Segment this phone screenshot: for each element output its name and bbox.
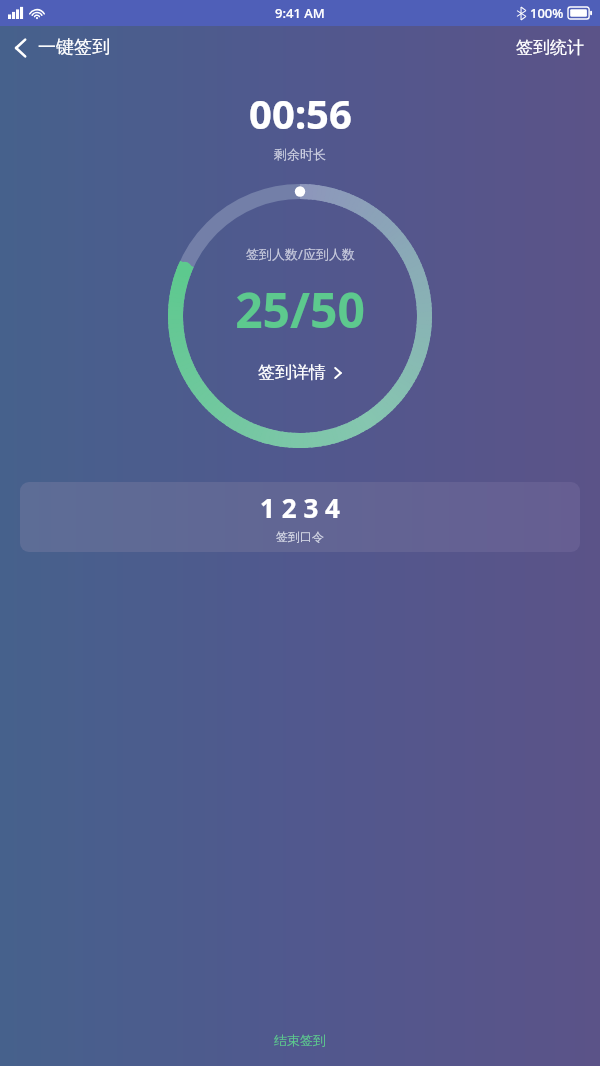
staticText: 剩余时长 (274, 146, 326, 162)
button[interactable]: Back (0, 30, 122, 65)
button[interactable]: 结束签到 (256, 1026, 344, 1054)
staticText: 签到统计 (516, 37, 584, 58)
other: Back (14, 37, 27, 59)
staticText: 结束签到 (274, 1032, 326, 1048)
button[interactable]: 1 2 3 4 (20, 482, 580, 552)
staticText: 00:56 (249, 86, 352, 140)
staticText: 一键签到 (38, 36, 110, 59)
button[interactable]: 签到统计 (500, 31, 600, 64)
staticText: 签到详情 (258, 362, 326, 383)
staticText: 25/50 (235, 277, 365, 342)
button[interactable]: 签到详情 (248, 358, 352, 387)
staticText: 签到人数/应到人数 (246, 245, 355, 263)
staticText: 100% (530, 4, 564, 22)
staticText: 9:41 AM (275, 4, 325, 22)
staticText: 签到口令 (276, 529, 324, 544)
staticText: 1 2 3 4 (260, 490, 340, 525)
